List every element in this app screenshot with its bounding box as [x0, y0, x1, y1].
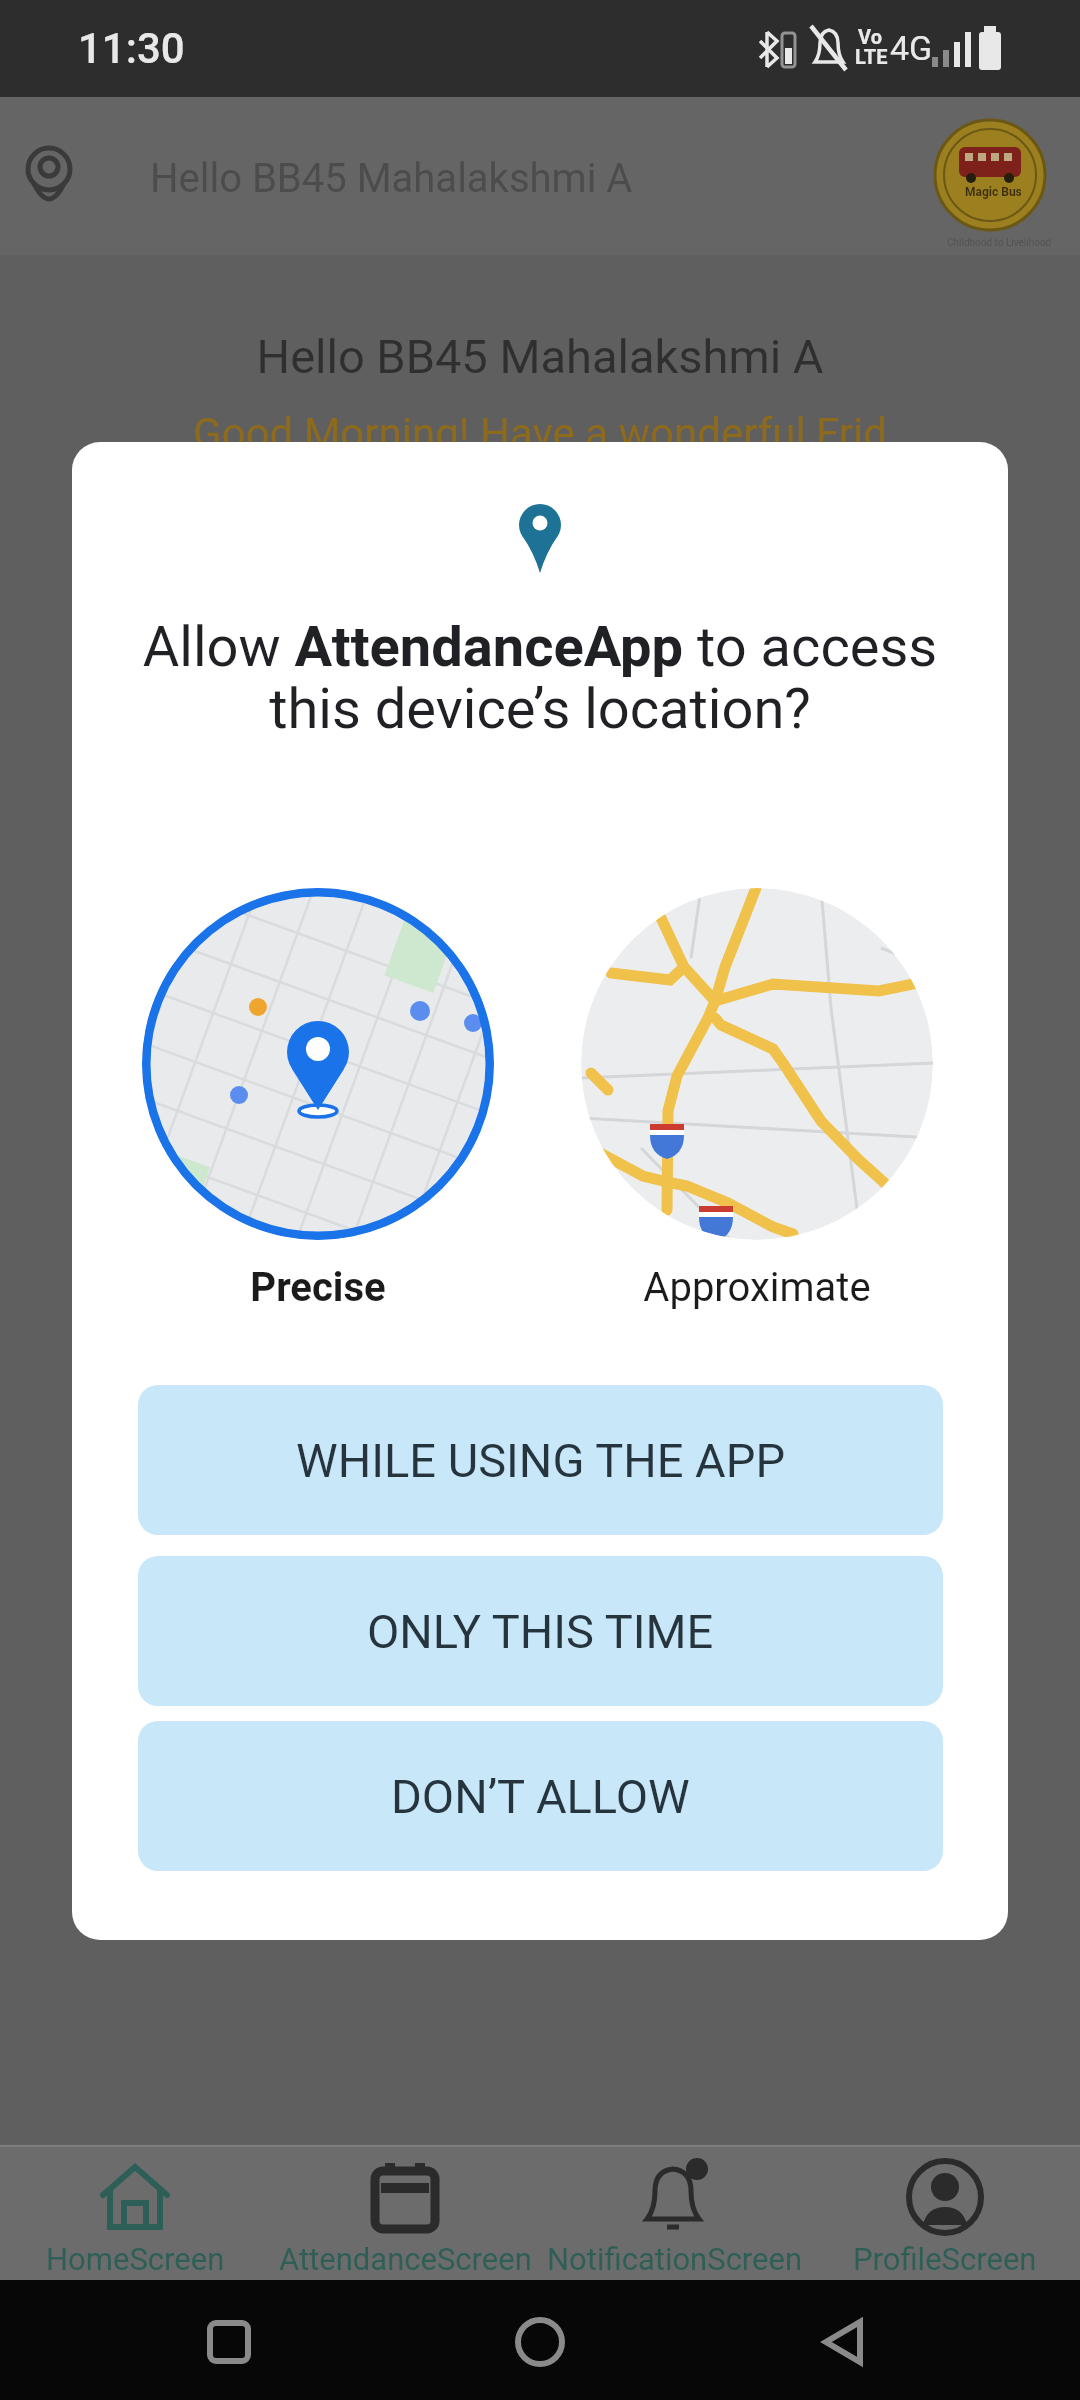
staticText: Childhood to Livelihood [947, 237, 1052, 249]
button[interactable]: AttendanceScreen [270, 2145, 540, 2280]
staticText: AttendanceScreen [279, 2241, 532, 2277]
button[interactable]: WHILE USING THE APP [138, 1385, 943, 1535]
button[interactable]: NotificationScreen [540, 2145, 810, 2280]
staticText: LTE [855, 45, 888, 68]
staticText: DON’T ALLOW [391, 1769, 690, 1824]
button[interactable] [142, 888, 494, 1240]
staticText: Allow AttendanceApp to access this devic… [72, 614, 1008, 742]
staticText: NotificationScreen [547, 2241, 803, 2277]
staticText: Hello BB45 Mahalakshmi A [150, 155, 633, 202]
button[interactable]: HomeScreen [0, 2145, 270, 2280]
staticText: HomeScreen [46, 2241, 225, 2277]
staticText: WHILE USING THE APP [296, 1433, 786, 1488]
staticText: Hello BB45 Mahalakshmi A [0, 329, 1080, 384]
staticText: Precise [142, 1264, 494, 1311]
staticText: 11:30 [78, 24, 185, 73]
staticText: Vo [858, 25, 882, 48]
button[interactable]: DON’T ALLOW [138, 1721, 943, 1871]
staticText: ProfileScreen [853, 2241, 1037, 2277]
staticText: ONLY THIS TIME [367, 1604, 714, 1659]
button[interactable]: ProfileScreen [810, 2145, 1080, 2280]
staticText: 4G [890, 28, 933, 68]
button[interactable] [581, 888, 933, 1240]
button[interactable]: ONLY THIS TIME [138, 1556, 943, 1706]
staticText: Magic Bus [965, 185, 1022, 199]
staticText: Good Morning! Have a wonderful Frid [0, 409, 1080, 458]
staticText: Approximate [581, 1264, 933, 1311]
